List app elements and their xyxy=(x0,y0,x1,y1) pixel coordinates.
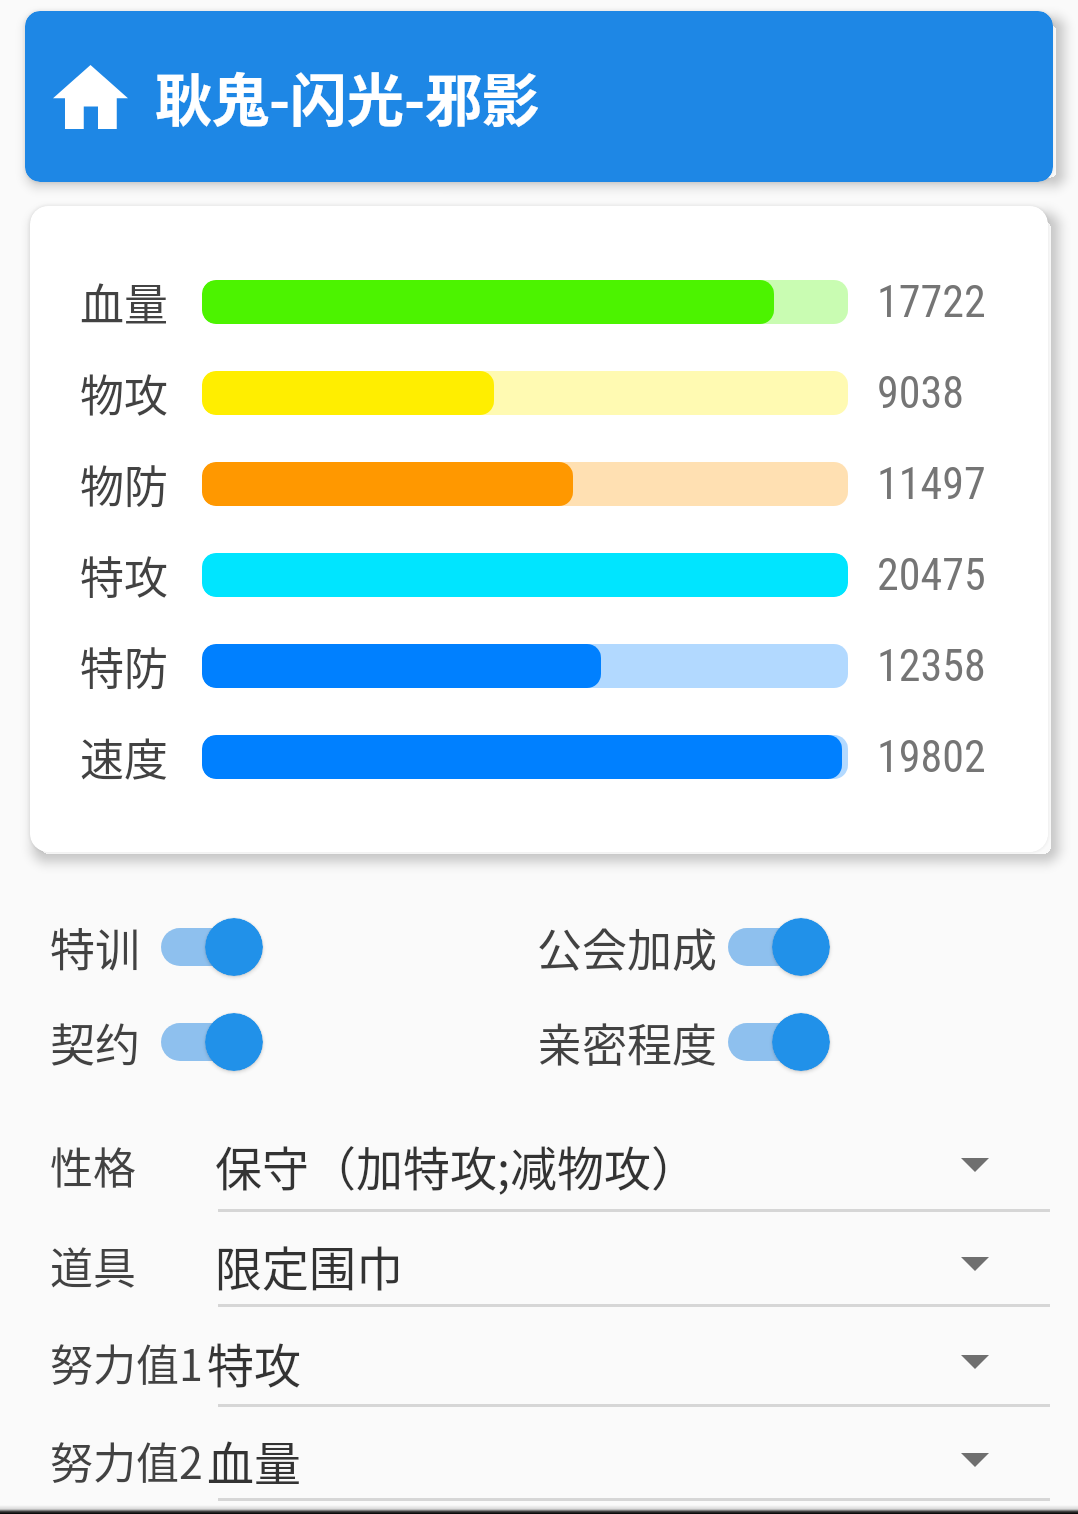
staticText: 保守（加特攻;减物攻） xyxy=(215,1131,699,1199)
button[interactable]: 努力值2 xyxy=(0,1407,1078,1501)
staticText: 血量 xyxy=(80,270,168,334)
button[interactable] xyxy=(728,1009,840,1075)
staticText: 11497 xyxy=(877,458,986,510)
staticText: 9038 xyxy=(877,367,964,419)
button[interactable]: 耿鬼-闪光-邪影 xyxy=(25,11,1053,182)
staticText: 特防 xyxy=(80,634,168,698)
button[interactable] xyxy=(161,1009,273,1075)
staticText: 19802 xyxy=(877,731,986,783)
staticText: 公会加成 xyxy=(537,915,718,980)
staticText: 亲密程度 xyxy=(537,1010,718,1075)
staticText: 性格 xyxy=(50,1134,136,1196)
button[interactable] xyxy=(728,914,840,980)
staticText: 血量 xyxy=(207,1426,301,1494)
button[interactable]: 努力值1 xyxy=(0,1307,1078,1407)
staticText: 特训 xyxy=(50,915,141,980)
staticText: 努力值1 xyxy=(50,1331,203,1393)
staticText: 道具 xyxy=(50,1234,136,1296)
button[interactable] xyxy=(161,914,273,980)
button[interactable]: 道具 xyxy=(0,1212,1078,1307)
button[interactable]: 性格 xyxy=(0,1116,1078,1212)
staticText: 契约 xyxy=(50,1010,141,1075)
staticText: 特攻 xyxy=(207,1328,301,1396)
staticText: 物攻 xyxy=(80,361,168,425)
staticText: 20475 xyxy=(877,549,986,601)
staticText: 物防 xyxy=(80,452,168,516)
staticText: 特攻 xyxy=(80,543,168,607)
staticText: 限定围巾 xyxy=(215,1231,403,1299)
staticText: 努力值2 xyxy=(50,1429,203,1491)
staticText: 耿鬼-闪光-邪影 xyxy=(155,55,540,138)
staticText: 17722 xyxy=(877,276,986,328)
staticText: 速度 xyxy=(80,725,168,789)
staticText: 12358 xyxy=(877,640,986,692)
